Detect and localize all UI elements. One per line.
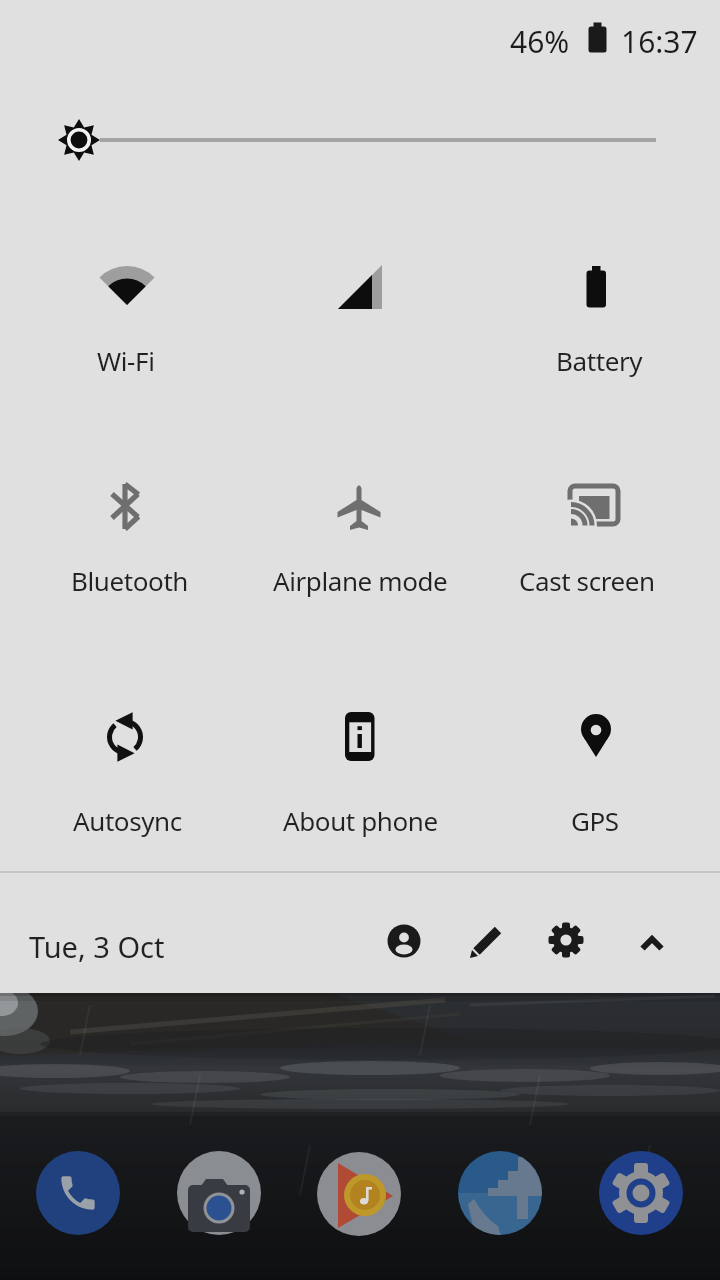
staticText: Wi-Fi <box>97 343 155 378</box>
staticText: Autosync <box>73 803 182 838</box>
staticText: Tue, 3 Oct <box>29 927 165 966</box>
button[interactable] <box>456 1149 544 1237</box>
button[interactable] <box>484 231 704 381</box>
staticText: GPS <box>571 803 619 838</box>
button[interactable] <box>380 917 428 965</box>
button[interactable] <box>17 231 237 381</box>
button[interactable] <box>250 231 470 381</box>
button[interactable] <box>175 1149 263 1237</box>
button[interactable] <box>17 451 237 601</box>
button[interactable] <box>542 916 590 964</box>
button[interactable] <box>628 917 676 965</box>
button[interactable] <box>463 917 511 965</box>
button[interactable] <box>34 1149 122 1237</box>
staticText: Bluetooth <box>71 563 189 598</box>
button[interactable] <box>17 682 237 832</box>
staticText: Cast screen <box>519 563 655 598</box>
button[interactable] <box>250 451 470 601</box>
staticText: 16:37 <box>621 21 698 59</box>
button[interactable] <box>484 451 704 601</box>
staticText: Airplane mode <box>273 563 448 598</box>
button[interactable] <box>250 682 470 832</box>
button[interactable] <box>315 1150 403 1238</box>
staticText: Battery <box>556 343 643 378</box>
staticText: 46% <box>510 21 570 59</box>
button[interactable] <box>597 1149 685 1237</box>
button[interactable] <box>484 682 704 832</box>
staticText: About phone <box>283 803 438 838</box>
